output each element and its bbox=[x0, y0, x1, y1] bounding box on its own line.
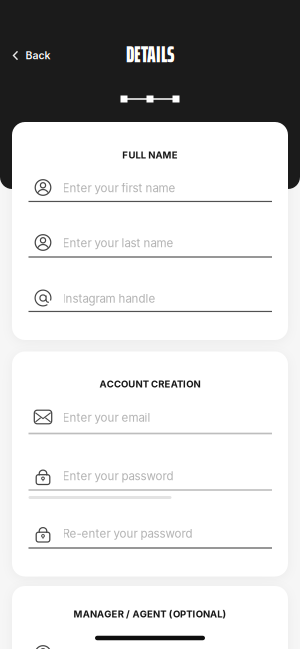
button[interactable]: Re-enter your password bbox=[12, 519, 288, 551]
staticText: Back bbox=[25, 49, 50, 62]
button[interactable]: Enter your password bbox=[12, 461, 288, 493]
button[interactable]: Enter your email bbox=[12, 403, 288, 436]
staticText: DETAILS bbox=[126, 37, 174, 72]
staticText: Enter your password bbox=[62, 469, 173, 483]
staticText: ACCOUNT CREATION bbox=[99, 378, 200, 390]
staticText: MANAGER / AGENT (OPTIONAL) bbox=[73, 608, 226, 620]
staticText: Enter your last name bbox=[62, 236, 173, 250]
button[interactable]: Enter your first name bbox=[12, 173, 288, 204]
button[interactable]: Enter your manager's name bbox=[31, 641, 55, 649]
button[interactable]: Instagram handle bbox=[12, 284, 288, 314]
staticText: Re-enter your password bbox=[62, 526, 192, 540]
staticText: Enter your first name bbox=[62, 181, 175, 195]
staticText: Enter your email bbox=[62, 410, 150, 424]
staticText: FULL NAME bbox=[122, 149, 178, 161]
staticText: Instagram handle bbox=[62, 291, 155, 305]
button[interactable]: Enter your last name bbox=[12, 228, 288, 260]
button[interactable]: Back bbox=[7, 44, 55, 66]
